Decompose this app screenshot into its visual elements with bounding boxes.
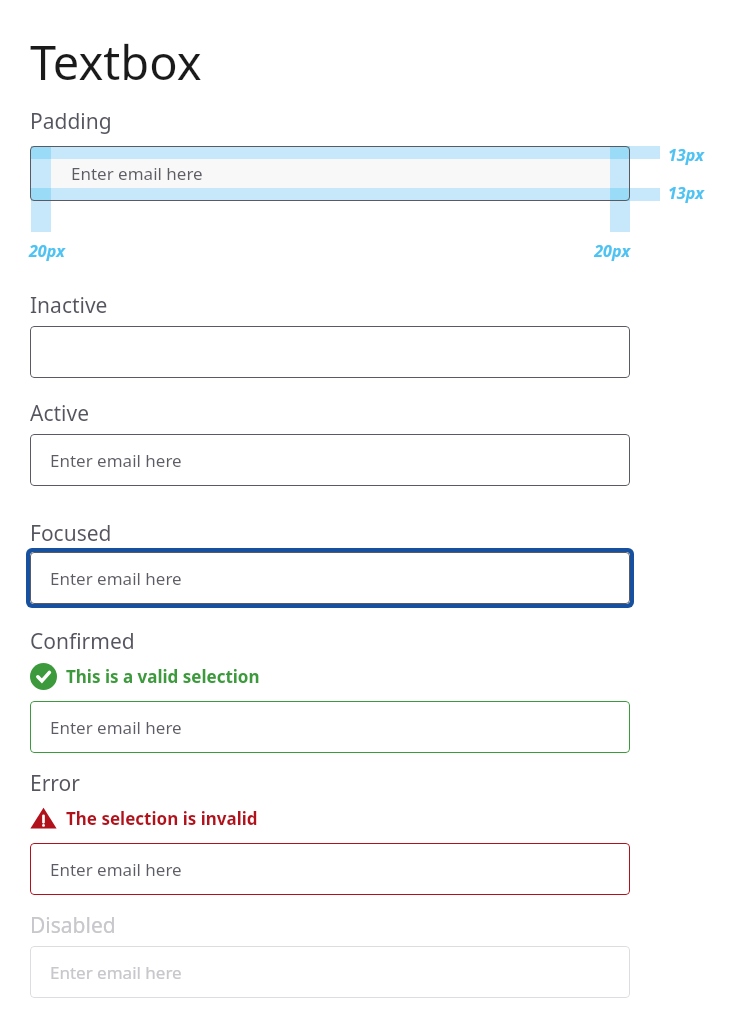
staticText: This is a valid selection (66, 665, 260, 688)
button[interactable]: Enter email here (30, 701, 630, 753)
other: Error (30, 805, 57, 832)
staticText: 20px (29, 240, 65, 262)
button[interactable]: Valid (30, 661, 260, 691)
staticText: Focused (30, 519, 112, 548)
staticText: The selection is invalid (66, 807, 258, 830)
staticText: Enter email here (50, 449, 182, 472)
button[interactable]: Enter email here (30, 946, 630, 998)
button[interactable]: Error (30, 803, 258, 833)
staticText: 20px (560, 240, 630, 262)
button[interactable]: Enter email here (30, 434, 630, 486)
staticText: Enter email here (50, 858, 182, 881)
button[interactable]: Enter email here (30, 843, 630, 895)
staticText: Textbox (30, 30, 202, 94)
other: Valid (30, 663, 57, 690)
staticText: Padding (30, 107, 112, 136)
button[interactable]: Enter email here (26, 548, 634, 608)
button[interactable] (30, 326, 630, 378)
button[interactable] (30, 146, 630, 201)
staticText: Disabled (30, 911, 116, 940)
staticText: Active (30, 399, 90, 428)
staticText: 13px (668, 182, 704, 204)
staticText: 13px (668, 144, 704, 166)
staticText: Enter email here (50, 567, 182, 590)
staticText: Confirmed (30, 627, 135, 656)
staticText: Enter email here (71, 162, 203, 185)
staticText: Enter email here (50, 716, 182, 739)
staticText: Error (30, 769, 80, 798)
staticText: Inactive (30, 291, 108, 320)
staticText: Enter email here (50, 961, 182, 984)
